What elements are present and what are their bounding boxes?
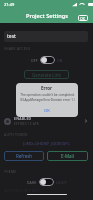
- staticText: JLMO+QHDIKF_JQDIEJGPL: [0, 141, 93, 146]
- staticText: ON: [57, 58, 63, 63]
- button[interactable]: ENABLED: [0, 115, 93, 127]
- button[interactable]: E-Mail: [47, 151, 88, 161]
- staticText: Error: [41, 85, 53, 91]
- staticText: Project Settings: [26, 12, 68, 20]
- button[interactable]: test: [4, 31, 88, 42]
- staticText: test: [7, 33, 16, 40]
- staticText: EXPIRES 15 APR: [14, 122, 39, 126]
- staticText: LIGHT: [56, 180, 67, 185]
- button[interactable]: OK: [78, 15, 88, 21]
- button[interactable]: [40, 56, 55, 64]
- staticText: E-Mail: [61, 153, 74, 159]
- staticText: OFF: [31, 58, 38, 63]
- staticText: The operation couldn't be completed. (EL…: [20, 93, 75, 102]
- button[interactable]: OK: [16, 105, 78, 117]
- staticText: Refresh: [16, 153, 33, 159]
- button[interactable]: Refresh: [4, 151, 44, 161]
- staticText: THEME: [4, 169, 17, 174]
- button[interactable]: [39, 178, 54, 186]
- staticText: DARK: [27, 180, 37, 185]
- staticText: SHARE ACCESS: [4, 46, 30, 51]
- button[interactable]: Generate Link: [24, 70, 69, 79]
- staticText: AUTH TOKEN: [4, 132, 28, 137]
- staticText: OK: [80, 16, 86, 21]
- staticText: ENABLED: [14, 116, 32, 121]
- staticText: Generate Link: [32, 72, 61, 78]
- staticText: OK: [44, 108, 50, 114]
- staticText: 21:49: [4, 2, 15, 7]
